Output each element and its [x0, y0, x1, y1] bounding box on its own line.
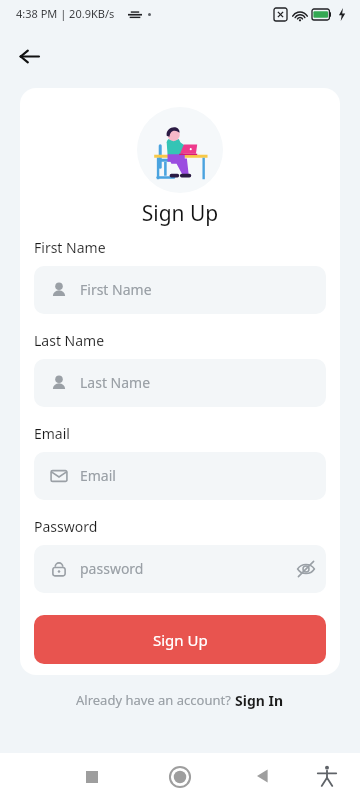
staticText: Sign In [235, 691, 284, 710]
staticText: Password [34, 517, 98, 536]
button[interactable]: Sign Up [34, 615, 326, 664]
button[interactable]: Back [252, 766, 272, 786]
button[interactable]: Back [12, 39, 46, 73]
button[interactable]: First Name [34, 266, 326, 314]
staticText: Email [34, 424, 70, 443]
button[interactable]: Home [168, 765, 192, 789]
staticText: First Name [80, 280, 152, 299]
button[interactable]: password [34, 545, 326, 593]
staticText: Sign Up [153, 630, 208, 650]
staticText: 4:38 PM | 20.9KB/s [16, 6, 115, 21]
staticText: Email [80, 466, 116, 485]
staticText: password [80, 559, 144, 578]
button[interactable]: Email [34, 452, 326, 500]
staticText: Last Name [34, 331, 105, 350]
button[interactable]: Last Name [34, 359, 326, 407]
button[interactable]: Already have an account? [0, 688, 360, 712]
staticText: Sign Up [20, 199, 340, 228]
staticText: First Name [34, 238, 106, 257]
button[interactable]: Accessibility [316, 765, 338, 787]
staticText: Already have an account? [76, 691, 235, 709]
staticText: Last Name [80, 373, 151, 392]
button[interactable]: Toggle password visibility [282, 545, 326, 593]
button[interactable]: Recents [82, 767, 102, 787]
